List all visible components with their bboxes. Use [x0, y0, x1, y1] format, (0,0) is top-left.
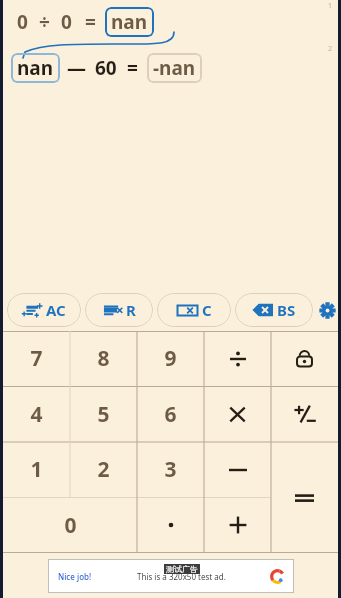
staticText: C [202, 300, 212, 320]
staticText: ÷ [39, 9, 50, 35]
button[interactable]: 4 [3, 386, 70, 442]
staticText: 8 [97, 344, 110, 373]
button[interactable]: 5 [70, 386, 137, 442]
staticText: 9 [164, 344, 177, 373]
staticText: 60 [95, 55, 117, 81]
button[interactable]: Equals [271, 442, 338, 553]
button[interactable]: 0 [3, 497, 137, 553]
staticText: 2 [328, 44, 333, 54]
button[interactable]: 2 [70, 442, 137, 497]
staticText: 1 [30, 455, 43, 484]
button[interactable]: Minus [204, 442, 271, 497]
button[interactable]: Lock [271, 331, 338, 386]
staticText: nan [111, 9, 148, 35]
button[interactable]: Plus minus [271, 386, 338, 442]
staticText: R [126, 300, 136, 320]
button[interactable]: BS [235, 293, 313, 327]
staticText: Nice job! [58, 571, 92, 582]
staticText: 4 [30, 400, 43, 429]
button[interactable]: 3 [137, 442, 204, 497]
button[interactable]: -nan [147, 53, 202, 83]
button[interactable]: 1 [3, 442, 70, 497]
button[interactable]: AC [7, 293, 81, 327]
button[interactable]: Settings [316, 293, 338, 327]
staticText: 0 [64, 511, 77, 540]
button[interactable]: nan [11, 53, 60, 83]
button[interactable]: nan [105, 7, 154, 37]
staticText: 2 [97, 455, 110, 484]
staticText: = [127, 55, 138, 81]
button[interactable]: 7 [3, 331, 70, 386]
button[interactable]: C [157, 293, 231, 327]
button[interactable]: R [85, 293, 153, 327]
button[interactable]: Multiply [204, 386, 271, 442]
staticText: 7 [30, 344, 43, 373]
staticText: 3 [164, 455, 177, 484]
staticText: nan [17, 55, 54, 81]
staticText: BS [277, 300, 296, 320]
staticText: 测试广告 [166, 564, 198, 574]
button[interactable]: 6 [137, 386, 204, 442]
staticText: 1 [328, 1, 333, 11]
staticText: 0 [61, 9, 72, 35]
button[interactable]: Divide [204, 331, 271, 386]
staticText: 6 [164, 400, 177, 429]
staticText: — [67, 55, 87, 81]
button[interactable]: 9 [137, 331, 204, 386]
staticText: = [85, 9, 96, 35]
button[interactable]: 8 [70, 331, 137, 386]
staticText: -nan [153, 55, 196, 81]
button[interactable]: Nice job! [48, 559, 294, 593]
staticText: 5 [97, 400, 110, 429]
staticText: AC [46, 300, 66, 320]
staticText: This is a 320x50 test ad. [137, 571, 226, 582]
button[interactable]: Add [204, 497, 271, 553]
staticText: 0 [17, 9, 28, 35]
button[interactable]: Decimal point [137, 497, 204, 553]
